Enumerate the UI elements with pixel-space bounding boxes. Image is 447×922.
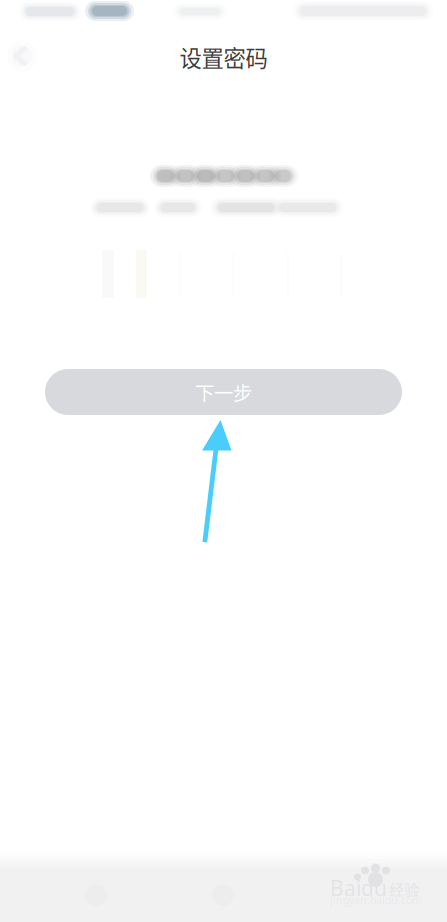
staticText: 经验 <box>389 878 419 900</box>
button[interactable]: 下一步 <box>45 369 402 415</box>
staticText: Baidu <box>330 874 387 902</box>
staticText: 下一步 <box>195 378 252 406</box>
button[interactable]: 返回 <box>0 34 44 78</box>
staticText: jingyan.baidu.com <box>330 893 422 907</box>
staticText: 设置密码 <box>179 41 267 73</box>
